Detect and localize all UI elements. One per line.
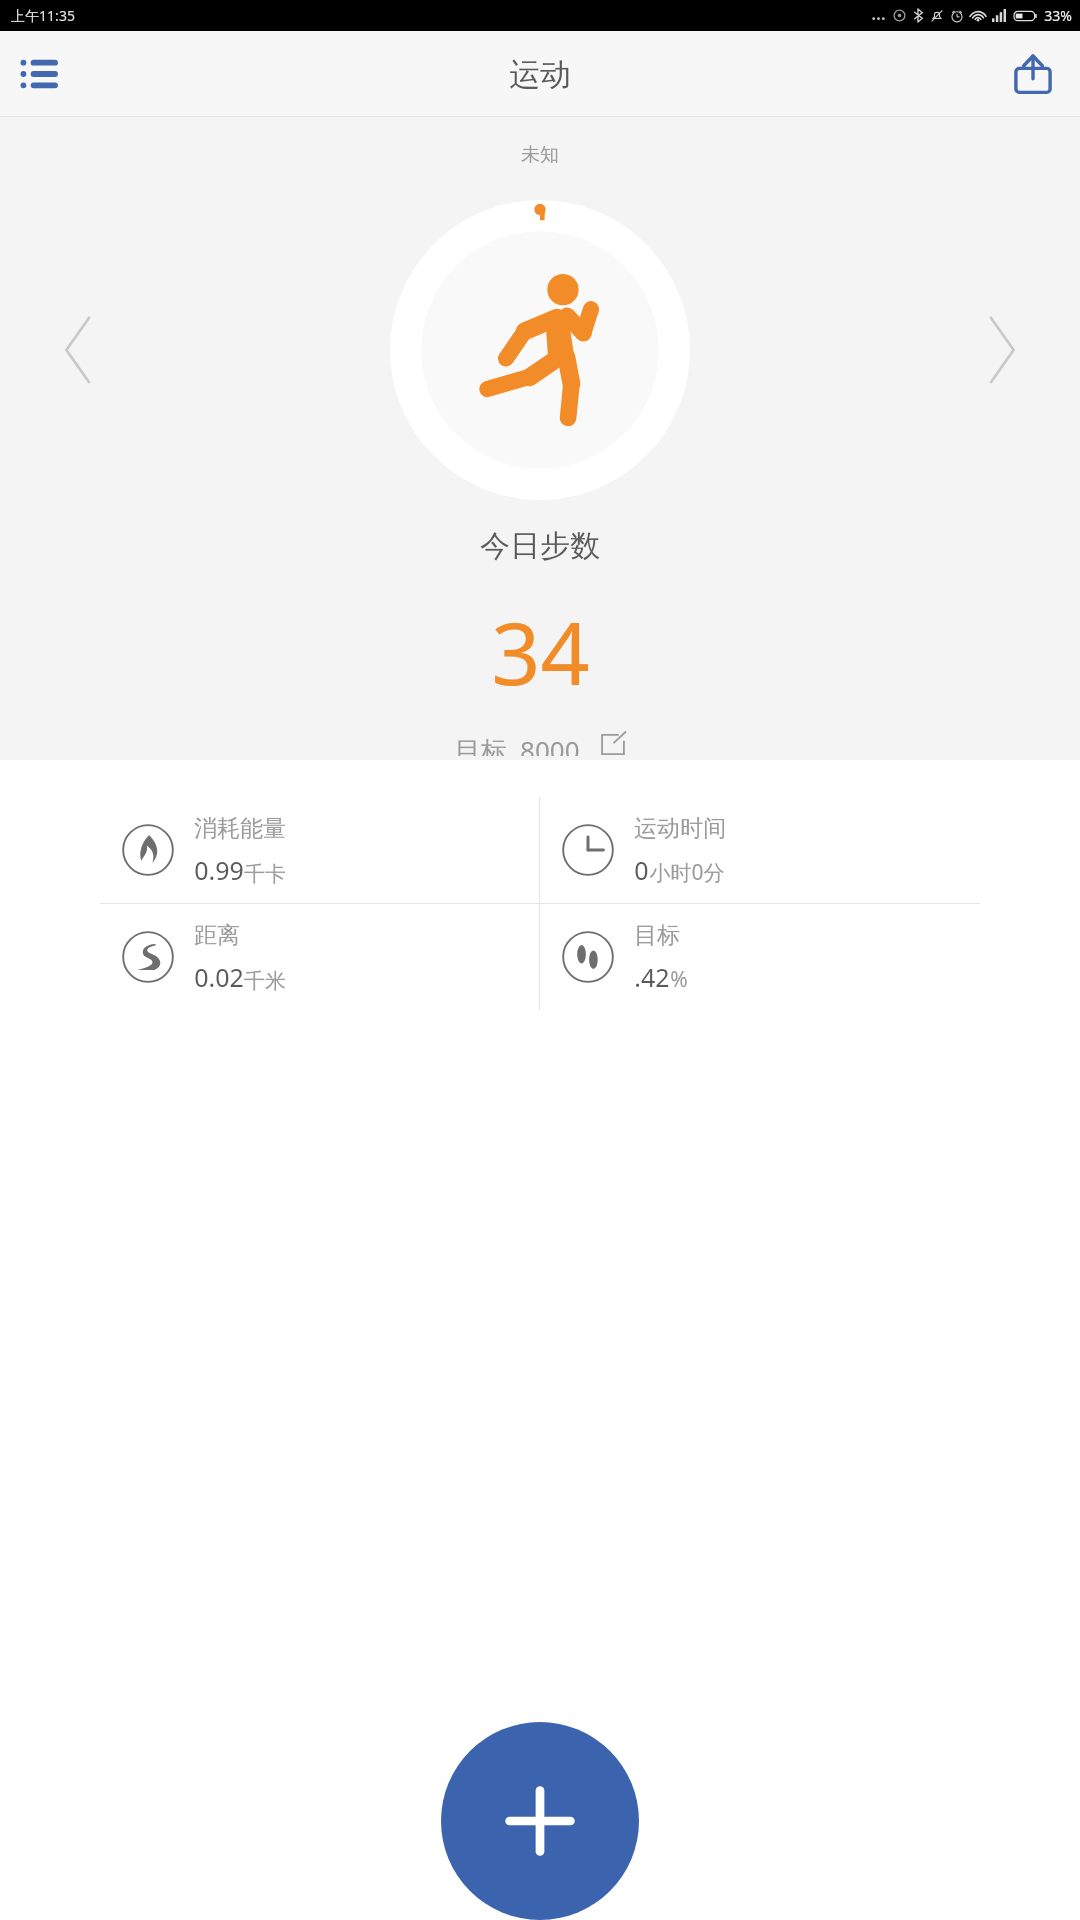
staticText: 今日步数 (480, 527, 600, 565)
staticText: 运动时间 (634, 814, 726, 843)
staticText: 目标 8000 (454, 732, 580, 756)
button[interactable]: Share (1000, 41, 1066, 107)
button[interactable]: Next (968, 315, 1038, 385)
staticText: 运动 (509, 55, 571, 94)
staticText: .42 (634, 960, 670, 994)
staticText: 34 (491, 593, 590, 710)
button[interactable]: Add (441, 1722, 639, 1920)
staticText: 0.02 (194, 960, 244, 994)
staticText: 未知 (521, 143, 559, 167)
button[interactable]: Previous (42, 315, 112, 385)
staticText: % (670, 965, 688, 994)
staticText: 千卡 (244, 861, 286, 887)
button[interactable]: 距离 (100, 904, 539, 1010)
staticText: 小时0分 (649, 858, 725, 887)
button[interactable]: 目标 8000 (444, 728, 636, 760)
button[interactable]: 消耗能量 (100, 797, 539, 903)
button[interactable]: 目标 (540, 904, 980, 1010)
staticText: 目标 (634, 921, 680, 950)
staticText: 消耗能量 (194, 814, 286, 843)
staticText: 0.99 (194, 853, 244, 887)
button[interactable]: Menu (10, 41, 76, 107)
staticText: 距离 (194, 921, 240, 950)
button[interactable]: 运动时间 (540, 797, 980, 903)
staticText: 0 (634, 853, 649, 887)
staticText: 千米 (244, 968, 286, 994)
staticText: 上午11:35 (11, 6, 75, 25)
staticText: 33% (1044, 6, 1072, 25)
